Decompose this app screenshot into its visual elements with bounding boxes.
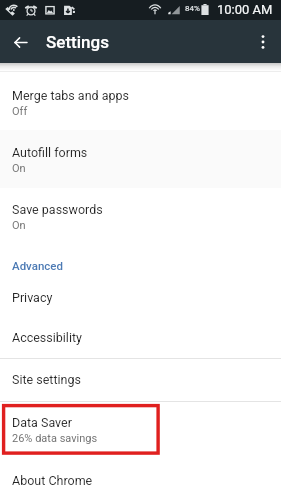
staticText: Settings (46, 32, 109, 52)
staticText: Advanced (12, 259, 63, 272)
button[interactable] (0, 72, 281, 130)
staticText: On (12, 219, 26, 232)
staticText: Autofill forms (12, 145, 88, 160)
button[interactable] (0, 460, 281, 500)
staticText: Accessibility (12, 330, 82, 345)
staticText: Privacy (12, 290, 53, 305)
staticText: 26% data savings (12, 432, 98, 445)
staticText: On (12, 162, 26, 175)
button[interactable]: More options (247, 26, 279, 58)
staticText: Merge tabs and apps (12, 88, 130, 103)
staticText: About Chrome (12, 473, 93, 488)
button[interactable] (0, 402, 281, 460)
staticText: Off (12, 105, 28, 118)
staticText: Data Saver (12, 415, 72, 430)
button[interactable] (0, 317, 281, 358)
staticText: 84% (185, 4, 200, 13)
staticText: Save passwords (12, 202, 103, 217)
button[interactable] (0, 130, 281, 188)
button[interactable] (0, 276, 281, 317)
button[interactable] (0, 359, 281, 401)
staticText: 10:00 AM (217, 2, 273, 17)
button[interactable] (0, 188, 281, 245)
staticText: Site settings (12, 372, 81, 387)
button[interactable]: Navigate up (5, 26, 37, 58)
